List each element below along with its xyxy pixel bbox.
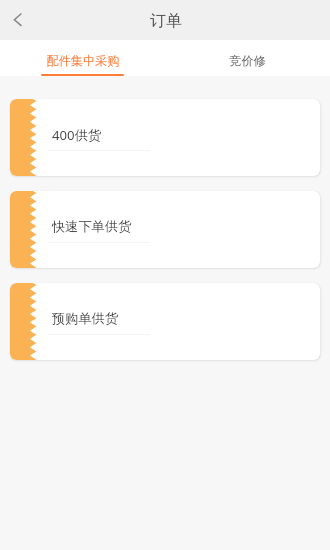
staticText: 订单 bbox=[150, 11, 182, 31]
staticText: 竞价修 bbox=[229, 53, 266, 68]
staticText: 预购单供货 bbox=[52, 310, 118, 327]
button[interactable]: Back bbox=[0, 0, 40, 40]
button[interactable]: 预购单供货 bbox=[10, 283, 320, 360]
button[interactable]: 配件集中采购 bbox=[0, 40, 165, 76]
button[interactable]: 400供货 bbox=[10, 99, 320, 176]
staticText: 快速下单供货 bbox=[52, 218, 132, 235]
button[interactable]: 快速下单供货 bbox=[10, 191, 320, 268]
staticText: 配件集中采购 bbox=[46, 53, 120, 68]
button[interactable]: 竞价修 bbox=[165, 40, 330, 76]
staticText: 400供货 bbox=[52, 126, 102, 144]
